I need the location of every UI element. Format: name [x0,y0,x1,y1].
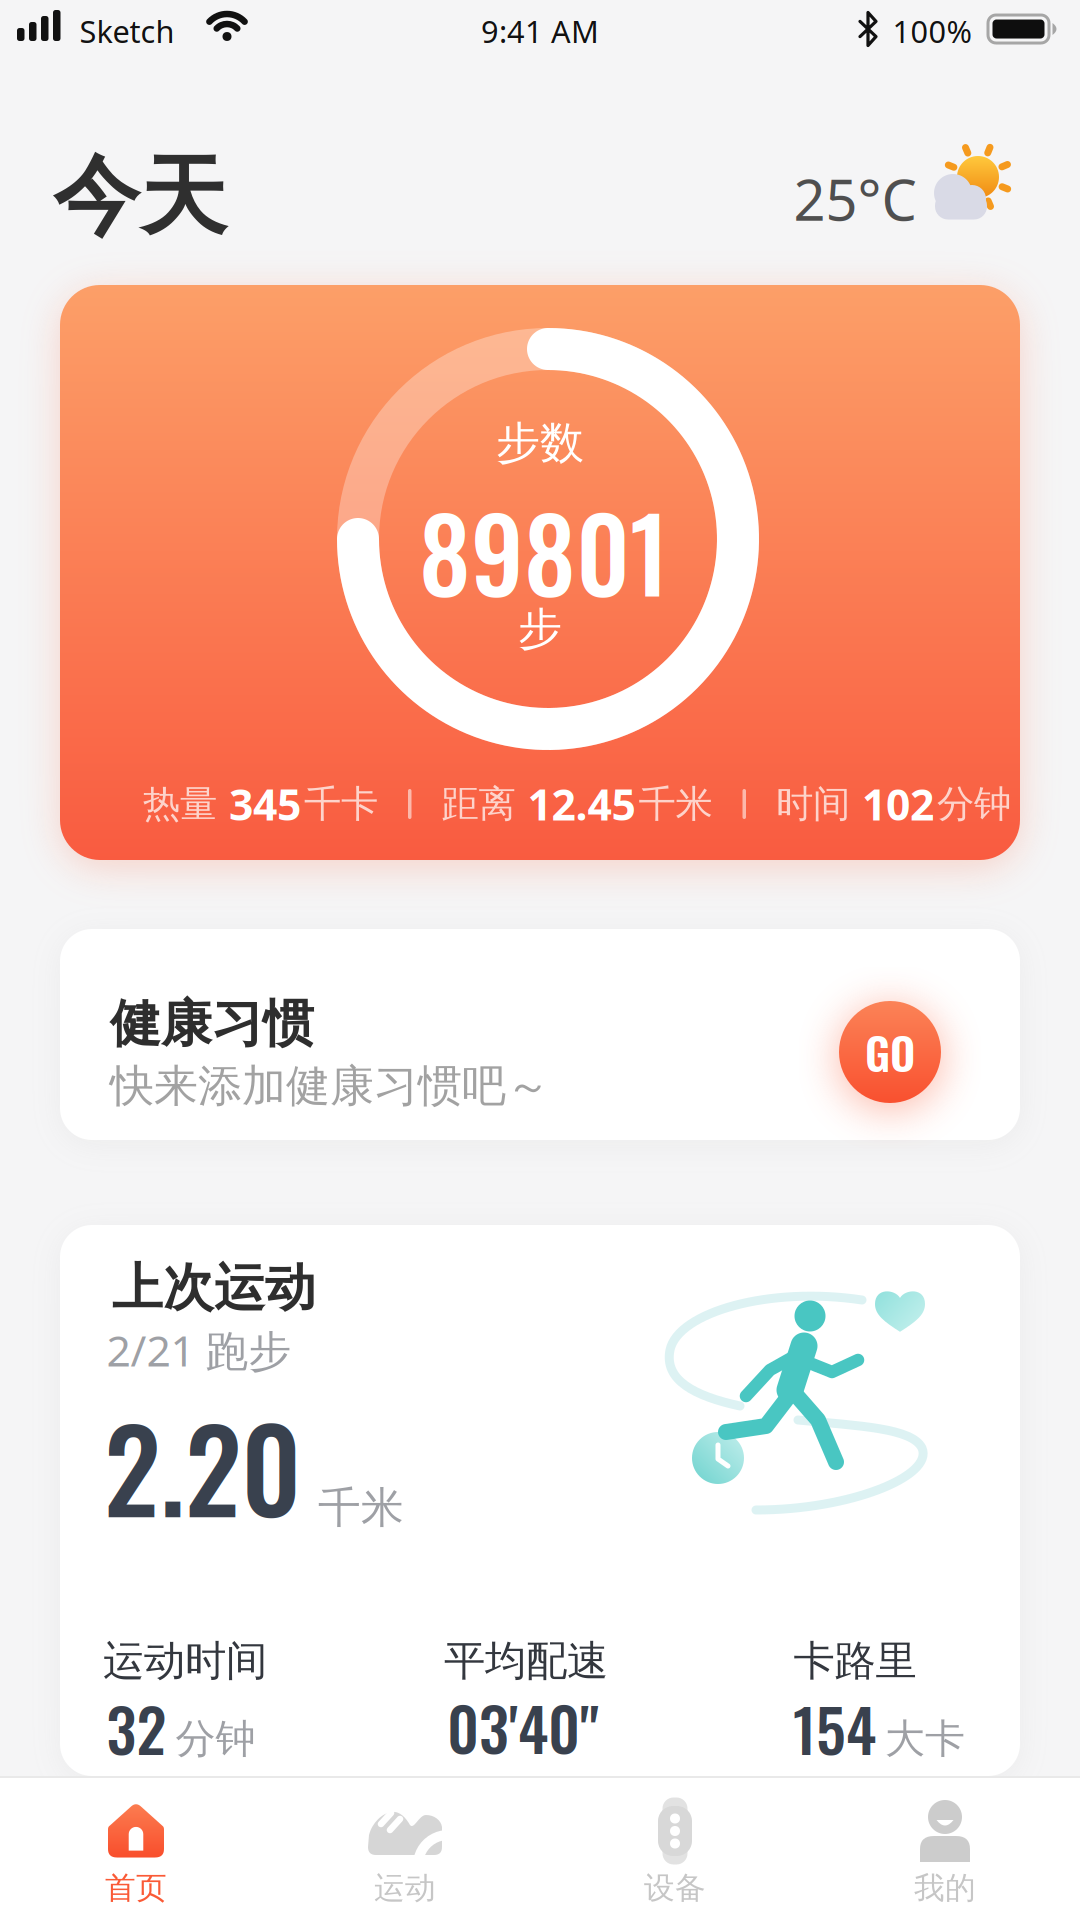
staticText: 运动 [374,1869,436,1907]
staticText: 运动时间 [103,1636,267,1686]
staticText: 千米 [638,781,712,827]
staticText: 健康习惯 [110,993,314,1055]
staticText: Sketch [79,11,174,51]
staticText: 100% [892,11,971,51]
staticText: 25°C [793,162,916,236]
button[interactable]: 我的 [835,1776,1055,1920]
staticText: 03'40" [447,1682,599,1771]
button[interactable]: GO [835,997,945,1107]
staticText: GO [865,1019,915,1085]
staticText: 345 [229,776,301,832]
button[interactable]: 运动 [295,1776,515,1920]
staticText: 快来添加健康习惯吧～ [110,1059,550,1113]
staticText: 大卡 [885,1714,965,1763]
staticText: 2.20 [104,1382,302,1550]
staticText: 154 [793,1683,876,1772]
staticText: 千卡 [304,781,378,827]
staticText: 上次运动 [112,1257,316,1319]
staticText: 我的 [914,1869,976,1907]
staticText: 距离 [441,781,515,827]
staticText: 设备 [644,1869,706,1907]
staticText: 平均配速 [444,1636,608,1686]
staticText: 步 [518,602,562,656]
staticText: 89801 [419,476,669,626]
staticText: 102 [862,776,934,832]
staticText: 时间 [776,781,850,827]
staticText: 2/21 跑步 [106,1322,291,1378]
staticText: 热量 [143,781,217,827]
button[interactable]: 设备 [565,1776,785,1920]
staticText: 32 [106,1683,166,1772]
staticText: 分钟 [937,781,1011,827]
staticText: 分钟 [175,1714,255,1763]
staticText: 步数 [496,416,584,470]
staticText: 首页 [105,1869,167,1907]
staticText: 卡路里 [793,1636,916,1686]
staticText: 12.45 [527,776,635,832]
staticText: 千米 [318,1482,404,1534]
button[interactable]: 首页 [26,1776,246,1920]
staticText: 9:41 AM [481,11,599,51]
staticText: 今天 [53,144,227,250]
